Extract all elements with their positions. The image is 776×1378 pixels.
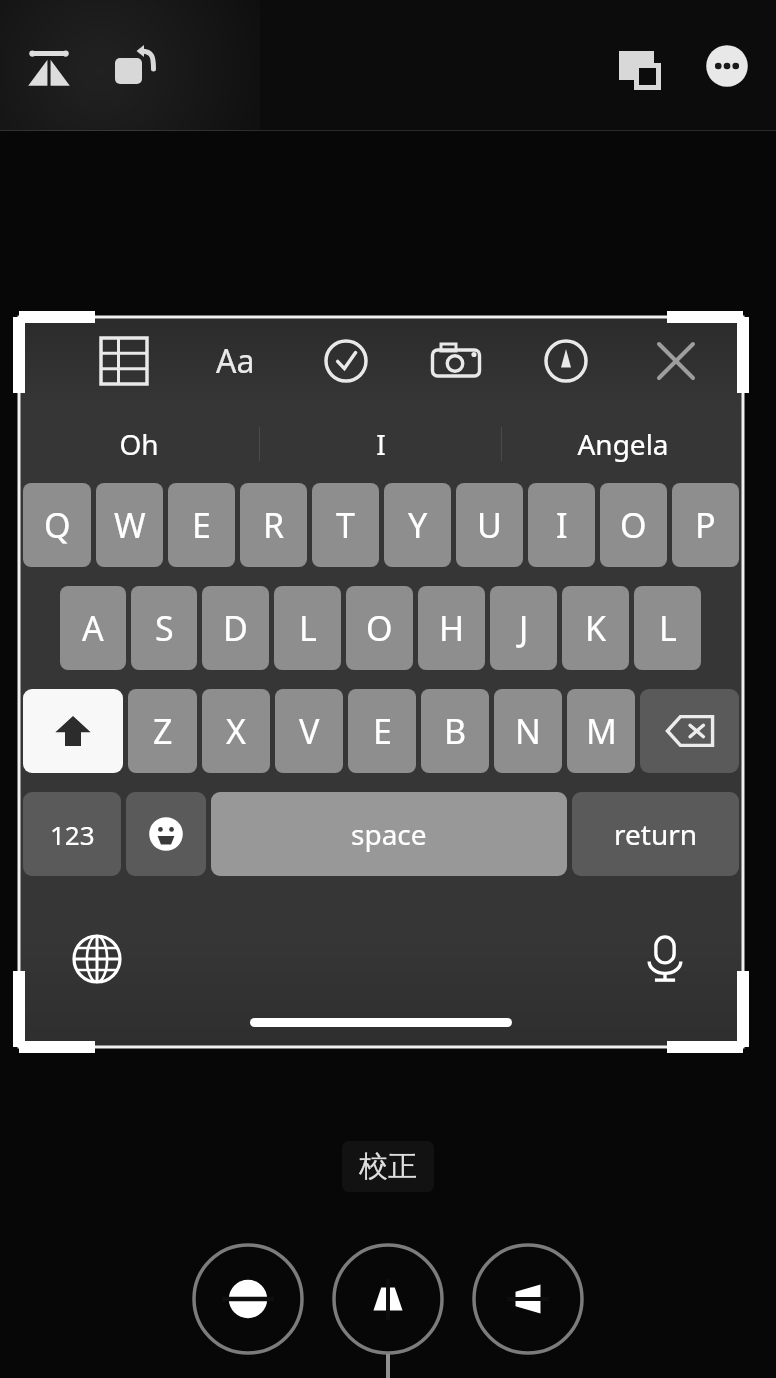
button[interactable]: L [274,586,341,670]
staticText: U [477,502,502,548]
staticText: D [223,605,248,651]
button[interactable]: Shift [23,689,123,773]
staticText: I [376,425,386,463]
button[interactable]: X [202,689,270,773]
button[interactable]: Perspective correction [12,29,86,103]
button[interactable]: Markup [533,328,599,394]
staticText: Y [408,502,428,548]
button[interactable]: I [260,405,501,483]
staticText: A [82,605,104,651]
button[interactable]: U [456,483,523,567]
staticText: space [351,815,427,853]
staticText: V [299,708,320,754]
button[interactable]: K [562,586,629,670]
staticText: O [366,605,393,651]
button[interactable]: S [131,586,197,670]
button[interactable]: P [672,483,739,567]
button[interactable]: 校正 [342,1141,434,1192]
button[interactable]: Change keyboard [65,927,129,991]
button[interactable]: Q [23,483,91,567]
staticText: S [155,605,174,651]
button[interactable]: Aa [202,328,268,394]
staticText: N [515,708,541,754]
button[interactable]: More options [690,29,764,103]
staticText: O [620,502,647,548]
button[interactable]: Flip vertical [329,1240,447,1358]
button[interactable]: J [490,586,557,670]
button[interactable]: L [634,586,701,670]
staticText: E [373,708,392,754]
staticText: Angela [577,425,669,463]
staticText: 123 [50,817,95,852]
button[interactable]: N [494,689,562,773]
staticText: Z [153,708,173,754]
button[interactable]: Rotate [98,29,172,103]
staticText: K [585,605,607,651]
button[interactable]: Layers [602,29,676,103]
button[interactable]: Backspace [640,689,739,773]
staticText: Aa [216,339,255,383]
staticText: Oh [119,425,159,463]
staticText: J [519,605,529,651]
staticText: X [226,708,246,754]
staticText: T [336,502,355,548]
button[interactable]: A [60,586,126,670]
button[interactable]: O [346,586,413,670]
button[interactable]: D [202,586,269,670]
button[interactable]: E [348,689,416,773]
staticText: R [263,502,285,548]
staticText: H [439,605,465,651]
button[interactable]: return [572,792,739,876]
button[interactable]: Table [91,328,157,394]
staticText: 校正 [359,1148,417,1185]
button[interactable]: Close [643,328,709,394]
button[interactable]: M [567,689,635,773]
button[interactable]: T [312,483,379,567]
staticText: return [614,815,698,853]
button[interactable]: R [240,483,307,567]
button[interactable]: space [211,792,567,876]
button[interactable]: 123 [23,792,121,876]
staticText: W [114,502,146,548]
button[interactable]: Flip horizontal [469,1240,587,1358]
button[interactable]: Z [128,689,197,773]
button[interactable]: W [96,483,163,567]
staticText: L [299,605,317,651]
button[interactable]: V [275,689,343,773]
button[interactable]: E [168,483,235,567]
button[interactable]: Checklist [313,328,379,394]
staticText: Q [44,502,71,548]
button[interactable]: B [421,689,489,773]
button[interactable]: Camera [423,328,489,394]
button[interactable]: Emoji [126,792,206,876]
button[interactable]: O [600,483,667,567]
button[interactable]: Dictation [633,927,697,991]
button[interactable]: Flip along horizontal axis [189,1240,307,1358]
button[interactable]: Y [384,483,451,567]
staticText: M [586,708,617,754]
staticText: L [659,605,677,651]
button[interactable]: I [528,483,595,567]
button[interactable]: H [418,586,485,670]
staticText: E [192,502,211,548]
staticText: I [556,502,568,548]
button[interactable]: Angela [502,405,743,483]
staticText: P [695,502,716,548]
staticText: B [444,708,467,754]
button[interactable]: Oh [19,405,259,483]
